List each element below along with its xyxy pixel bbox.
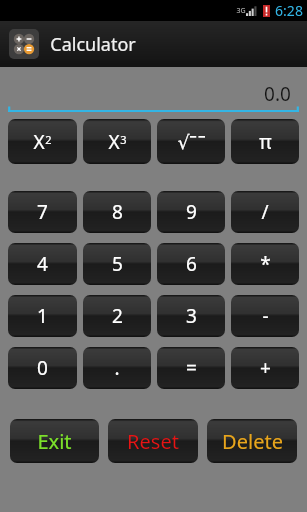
staticText: 9	[186, 199, 197, 225]
staticText: 6	[186, 251, 197, 277]
button[interactable]: 6	[157, 243, 225, 285]
button[interactable]: 5	[83, 243, 151, 285]
button[interactable]: X	[8, 119, 77, 164]
staticText: 4	[37, 251, 48, 277]
button[interactable]: X	[83, 119, 151, 164]
button[interactable]: 7	[8, 191, 77, 233]
staticText: 7	[37, 199, 48, 225]
button[interactable]: √	[157, 119, 225, 164]
button[interactable]: 2	[83, 295, 151, 337]
staticText: X	[108, 129, 120, 155]
staticText: 0	[37, 355, 48, 381]
staticText: /	[261, 199, 269, 225]
button[interactable]: 8	[83, 191, 151, 233]
staticText: 3	[186, 303, 197, 329]
button[interactable]: 3	[157, 295, 225, 337]
staticText: 1	[37, 303, 48, 329]
button[interactable]: 1	[8, 295, 77, 337]
staticText: 8	[112, 199, 123, 225]
staticText: Delete	[222, 428, 283, 455]
button[interactable]: 0	[8, 347, 77, 389]
staticText: 3G	[236, 6, 246, 16]
button[interactable]: Delete	[207, 419, 297, 463]
staticText: π	[259, 129, 272, 155]
button[interactable]: =	[157, 347, 225, 389]
staticText: *	[260, 251, 271, 277]
button[interactable]: 9	[157, 191, 225, 233]
button[interactable]: π	[231, 119, 299, 164]
button[interactable]: 4	[8, 243, 77, 285]
staticText: Reset	[127, 428, 179, 455]
staticText: √	[177, 131, 190, 153]
staticText: Exit	[37, 428, 72, 455]
staticText: 2	[45, 132, 52, 147]
button[interactable]: .	[83, 347, 151, 389]
button[interactable]: Reset	[108, 419, 198, 463]
staticText: Calculator	[50, 32, 136, 57]
button[interactable]: +	[231, 347, 299, 389]
staticText: X	[33, 129, 45, 155]
staticText: 0.0	[264, 81, 291, 107]
button[interactable]: Exit	[10, 419, 99, 463]
staticText: -	[262, 303, 269, 329]
staticText: 6:28	[275, 1, 303, 20]
staticText: =	[186, 355, 197, 381]
staticText: .	[114, 355, 120, 381]
staticText: 5	[112, 251, 123, 277]
other: Calculator app icon	[9, 29, 39, 59]
staticText: 2	[112, 303, 123, 329]
staticText: 3	[120, 132, 127, 147]
staticText: +	[260, 355, 271, 381]
button[interactable]: *	[231, 243, 299, 285]
button[interactable]: -	[231, 295, 299, 337]
button[interactable]: /	[231, 191, 299, 233]
